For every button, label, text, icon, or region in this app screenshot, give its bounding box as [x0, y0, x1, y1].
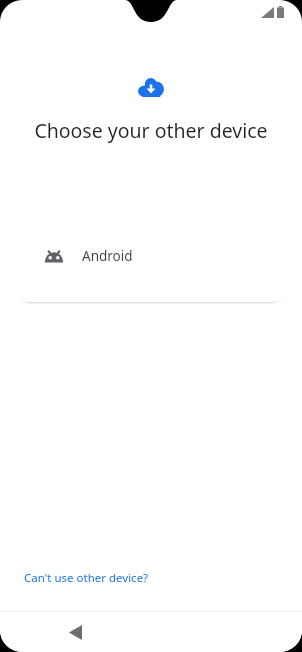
button[interactable]: Back: [58, 615, 92, 649]
button[interactable]: Can't use other device?: [14, 565, 159, 591]
staticText: Choose your other device: [16, 117, 286, 144]
button[interactable]: Android: [20, 210, 282, 302]
staticText: Android: [82, 247, 133, 265]
staticText: Can't use other device?: [24, 570, 149, 586]
